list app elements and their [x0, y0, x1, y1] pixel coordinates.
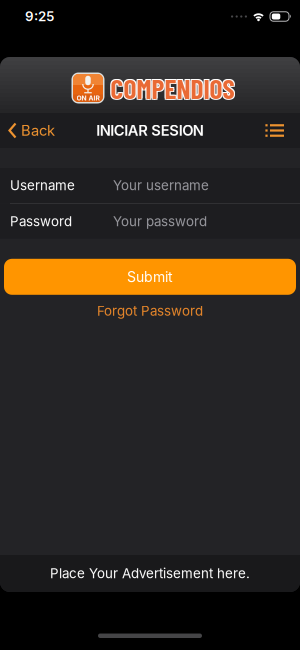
staticText: Submit: [127, 268, 173, 285]
button[interactable]: Submit: [0, 259, 300, 295]
staticText: COMPENDIOS: [111, 72, 235, 105]
button[interactable]: Back: [0, 122, 55, 139]
staticText: Back: [21, 122, 55, 139]
staticText: COMPENDIOS: [110, 72, 234, 104]
staticText: Username: [10, 177, 75, 193]
staticText: Forgot Password: [97, 303, 203, 319]
staticText: Password: [10, 213, 72, 229]
button[interactable]: Forgot Password: [97, 303, 203, 319]
staticText: COMPENDIOS: [110, 71, 234, 103]
staticText: 9:25: [25, 8, 54, 24]
button[interactable]: Password: [0, 204, 300, 239]
staticText: INICIAR SESION: [96, 122, 204, 139]
staticText: COMPENDIOS: [110, 72, 234, 105]
staticText: COMPENDIOS: [111, 71, 235, 103]
button[interactable]: Menu: [265, 124, 300, 137]
button[interactable]: Username: [0, 168, 300, 203]
staticText: Your password: [113, 213, 207, 229]
staticText: Place Your Advertisement here.: [50, 565, 250, 581]
button[interactable]: Place Your Advertisement here.: [0, 555, 300, 592]
staticText: ON AIR: [76, 94, 99, 102]
staticText: Your username: [113, 177, 209, 193]
